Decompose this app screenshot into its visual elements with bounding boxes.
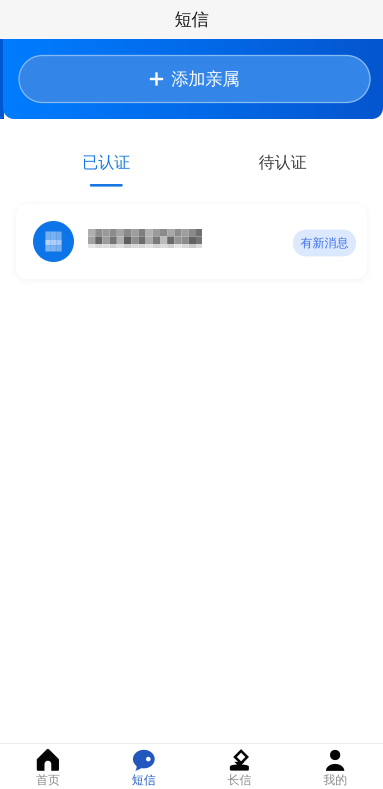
staticText: 待认证 [259,153,307,172]
staticText: 短信 [132,773,156,787]
button[interactable]: 待认证 [194,119,371,204]
button[interactable]: 有新消息 [16,204,367,279]
button[interactable]: 首页 [0,744,96,789]
staticText: 首页 [36,773,60,787]
staticText: 已认证 [82,153,130,172]
staticText: 长信 [227,773,251,787]
button[interactable]: 长信 [191,744,287,789]
button[interactable]: 已认证 [18,119,194,204]
staticText: 添加亲属 [171,68,239,90]
button[interactable]: 短信 [96,744,192,789]
button[interactable]: 我的 [287,744,383,789]
staticText: 短信 [174,9,208,30]
staticText: 我的 [323,773,347,787]
staticText: 有新消息 [300,236,348,250]
button[interactable]: 添加亲属 [0,55,383,102]
